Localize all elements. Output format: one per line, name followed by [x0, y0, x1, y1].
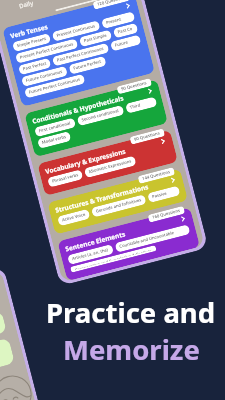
button[interactable]: Future Perfect — [68, 56, 107, 75]
staticText: Present Continuous — [56, 23, 96, 39]
staticText: Comparative and Superlative Adjectives — [74, 248, 152, 270]
staticText: Present Perfect — [105, 14, 131, 26]
staticText: Future Continuous — [25, 69, 64, 84]
button[interactable]: Past Perfect — [18, 58, 51, 75]
staticText: Future Perfect — [73, 59, 102, 72]
button[interactable]: Active Voice — [57, 209, 90, 226]
button[interactable]: Simple Present — [12, 33, 51, 52]
button[interactable]: Phrasal verbs — [47, 169, 83, 188]
staticText: 144 Questions — [142, 169, 171, 182]
button[interactable]: Countable and Uncountable Nouns — [114, 224, 191, 253]
staticText: 120 Questions — [96, 0, 126, 8]
staticText: Past Perfect — [22, 61, 47, 72]
button[interactable]: Passive Voice — [147, 185, 181, 203]
staticText: Modal verbs — [41, 134, 67, 146]
staticText: 160 Questions — [152, 208, 181, 221]
button[interactable]: Sentence Elements — [57, 207, 200, 281]
staticText: Conditionals & Hypotheticals — [31, 93, 124, 126]
staticText: Passive Voice — [151, 188, 176, 200]
button[interactable]: Future Perfect Continuous — [24, 74, 86, 99]
button[interactable]: Past Perfect Continuous — [52, 43, 110, 67]
button[interactable]: Modal verbs — [37, 131, 71, 149]
staticText: Third conditional — [129, 99, 153, 111]
staticText: Sentence Elements — [64, 229, 127, 253]
staticText: Structures & Transformations — [54, 182, 149, 215]
button[interactable]: Past Continuous — [113, 23, 138, 38]
staticText: Articles (a, an, the) — [71, 247, 110, 262]
staticText: Simple Present — [16, 36, 47, 49]
button[interactable]: Second conditional — [77, 105, 125, 126]
staticText: Future Simple — [114, 37, 137, 49]
button[interactable]: Present Continuous — [52, 20, 101, 42]
button[interactable]: Vocabulary & Expressions — [37, 130, 178, 196]
button[interactable]: Structures & Transformations — [47, 168, 188, 235]
staticText: Second conditional — [81, 108, 120, 123]
button[interactable]: Present Perfect — [101, 11, 135, 29]
button[interactable]: Past Simple — [79, 29, 112, 47]
button[interactable]: Present Perfect Continuous — [15, 38, 78, 64]
staticText: Memorize — [63, 331, 200, 368]
staticText: Verb Tenses — [9, 22, 49, 40]
staticText: Countable and Uncountable Nouns — [119, 227, 186, 250]
staticText: Past Perfect Continuous — [56, 46, 105, 64]
staticText: Idiomatic Expressions — [88, 158, 132, 175]
button[interactable]: Conditionals & Hypotheticals — [24, 79, 168, 157]
staticText: Daily — [18, 0, 35, 10]
staticText: 90 Questions — [120, 80, 148, 92]
staticText: Gerunds and Infinitives — [95, 197, 142, 215]
staticText: First conditional — [38, 120, 72, 134]
button[interactable]: Third conditional — [125, 96, 157, 114]
button[interactable]: Idiomatic Expressions — [84, 155, 137, 178]
staticText: Future Perfect Continuous — [28, 77, 81, 96]
button[interactable]: Future Simple — [110, 34, 141, 52]
button[interactable]: Future Continuous — [21, 66, 68, 87]
staticText: 90 Questions — [133, 130, 161, 143]
button[interactable]: First conditional — [34, 117, 76, 137]
button[interactable]: Verb Tenses — [2, 0, 155, 107]
staticText: Practice and — [46, 294, 216, 331]
button[interactable]: Articles (a, an, the) — [67, 244, 114, 265]
staticText: Past Simple — [83, 32, 108, 44]
staticText: Active Voice — [61, 212, 86, 223]
staticText: Vocabulary & Expressions — [44, 147, 127, 176]
staticText: Present Perfect Continuous — [19, 41, 74, 61]
button[interactable]: Comparative and Superlative Adjectives — [70, 245, 157, 273]
staticText: Past Continuous — [117, 26, 134, 35]
staticText: Phrasal verbs — [51, 172, 79, 185]
button[interactable]: Gerunds and Infinitives — [91, 194, 147, 218]
